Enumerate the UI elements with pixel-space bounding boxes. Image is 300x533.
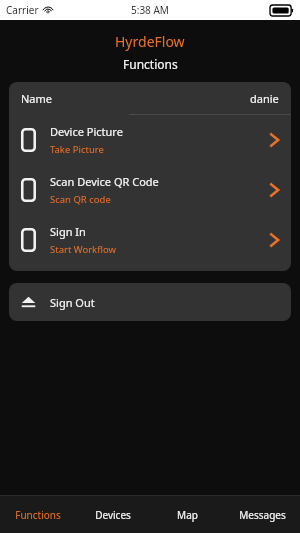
staticText: Functions: [15, 508, 61, 522]
button[interactable]: Devices: [75, 496, 150, 533]
staticText: Take Picture: [50, 143, 104, 156]
staticText: danie: [250, 91, 279, 106]
button[interactable]: Sign Out: [9, 283, 291, 321]
staticText: HyrdeFlow: [115, 32, 185, 51]
other: Sign Out: [21, 295, 36, 309]
staticText: Scan Device QR Code: [50, 174, 159, 189]
button[interactable]: Device Picture: [9, 115, 291, 165]
button[interactable]: Map: [150, 496, 225, 533]
staticText: Name: [21, 91, 53, 106]
staticText: Functions: [123, 56, 178, 72]
button[interactable]: Sign In: [9, 215, 291, 265]
staticText: 5:38 AM: [131, 3, 169, 17]
staticText: Devices: [95, 508, 131, 522]
staticText: Sign In: [50, 224, 86, 239]
staticText: Messages: [239, 508, 286, 522]
staticText: Scan QR code: [50, 193, 111, 206]
staticText: Sign Out: [50, 295, 95, 310]
button[interactable]: Functions: [0, 496, 75, 533]
staticText: Map: [177, 508, 198, 522]
staticText: Device Picture: [50, 124, 123, 139]
button[interactable]: Messages: [225, 496, 300, 533]
button[interactable]: Scan Device QR Code: [9, 165, 291, 215]
staticText: Start Workflow: [50, 243, 116, 256]
staticText: Carrier: [6, 3, 39, 17]
